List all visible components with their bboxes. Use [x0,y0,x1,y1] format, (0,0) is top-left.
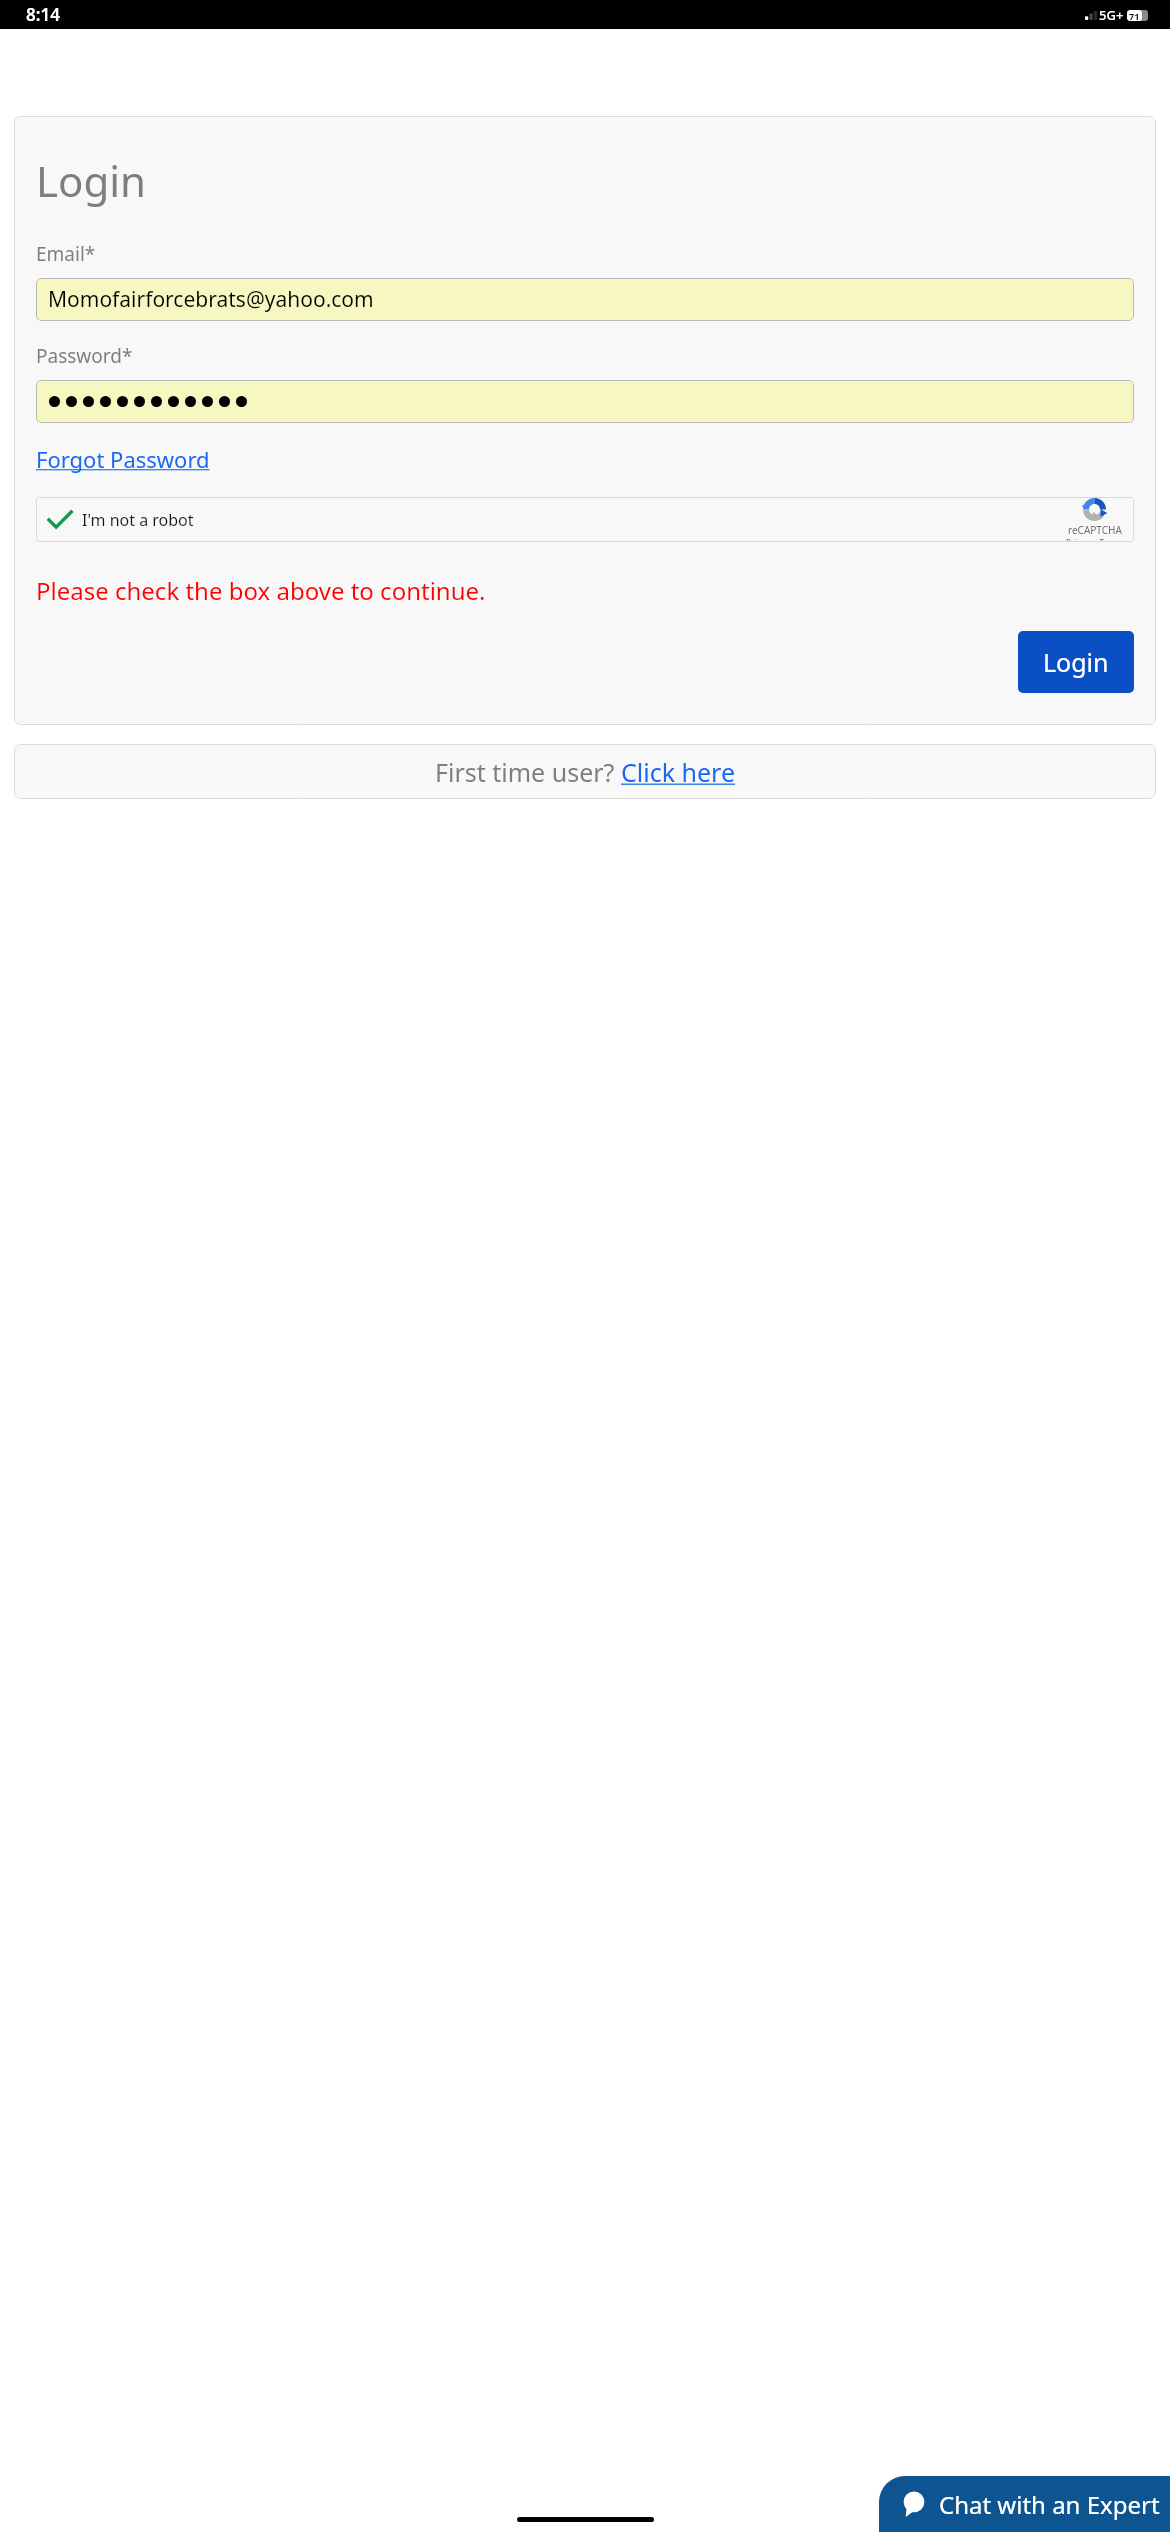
button[interactable]: Login [1018,631,1134,693]
staticText: Momofairforcebrats@yahoo.com [48,285,374,314]
staticText: Chat with an Expert [939,2488,1160,2521]
staticText: Login [36,152,147,209]
staticText: I'm not a robot [82,509,194,531]
staticText: Forgot Password [36,444,210,474]
staticText: First time user? [435,755,621,789]
button[interactable] [36,380,1134,423]
staticText: Privacy - Terms [1066,537,1123,542]
staticText: 5G+ [1099,6,1124,24]
staticText: reCAPTCHA [1068,523,1122,537]
button[interactable]: I'm not a robot [36,497,1134,542]
button[interactable]: First time user? [14,744,1156,799]
staticText: Password* [36,343,133,369]
button[interactable]: Forgot Password [36,444,210,474]
staticText: Click here [621,755,736,789]
staticText: Email* [36,241,96,267]
staticText: 8:14 [26,3,60,26]
other: Chat [901,2491,927,2517]
staticText: Login [1043,645,1109,679]
button[interactable]: Momofairforcebrats@yahoo.com [36,278,1134,321]
staticText: 71 [1129,10,1140,21]
staticText: Please check the box above to continue. [36,574,1134,607]
button[interactable]: Chat [879,2476,1170,2532]
